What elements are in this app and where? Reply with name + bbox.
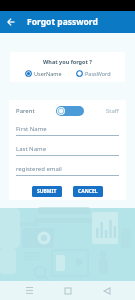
button[interactable]: SUBMIT xyxy=(32,186,62,197)
staticText: First Name xyxy=(16,125,47,133)
button[interactable]: Back xyxy=(0,11,22,33)
button[interactable]: Staff xyxy=(106,107,119,115)
button[interactable]: Toggle Parent or Staff xyxy=(56,106,84,116)
button[interactable]: First Name xyxy=(16,125,119,136)
button[interactable]: registered email xyxy=(16,165,119,176)
staticText: What you forgot ? xyxy=(43,58,92,65)
staticText: CANCEL xyxy=(78,188,98,195)
staticText: Forgot password xyxy=(27,16,98,28)
staticText: PassWord xyxy=(85,70,111,77)
staticText: UserName xyxy=(34,70,62,77)
button[interactable]: Parent xyxy=(16,107,35,115)
button[interactable]: Back xyxy=(97,281,116,300)
button[interactable]: UserName xyxy=(25,70,62,77)
staticText: SUBMIT xyxy=(37,188,57,195)
staticText: Last Name xyxy=(16,145,47,153)
button[interactable]: CANCEL xyxy=(73,186,103,197)
button[interactable]: PassWord xyxy=(76,70,111,77)
button[interactable]: Recents xyxy=(20,281,39,300)
staticText: registered email xyxy=(16,165,62,173)
staticText: Parent xyxy=(16,107,35,115)
staticText: Staff xyxy=(106,107,119,115)
button[interactable]: Home xyxy=(58,281,77,300)
button[interactable]: Last Name xyxy=(16,145,119,156)
